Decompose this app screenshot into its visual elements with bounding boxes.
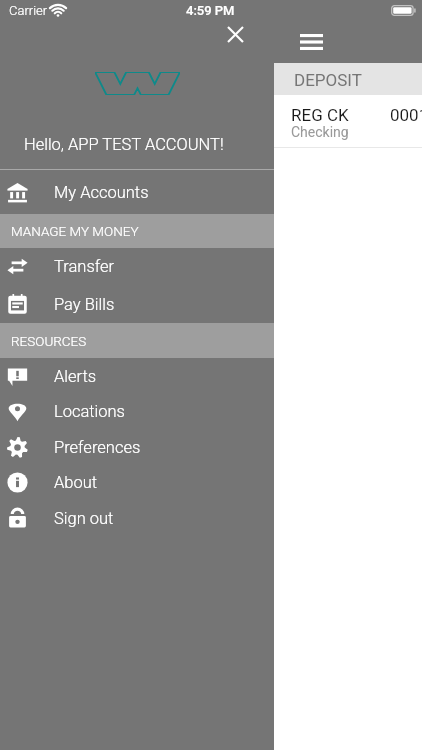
staticText: Checking xyxy=(291,124,349,140)
staticText: Locations xyxy=(54,402,125,421)
button[interactable]: Alerts xyxy=(0,358,274,394)
staticText: MANAGE MY MONEY xyxy=(11,223,139,239)
staticText: Carrier xyxy=(9,3,48,18)
button[interactable]: Sign out xyxy=(0,500,274,536)
button[interactable]: Preferences xyxy=(0,429,274,465)
button[interactable]: Menu xyxy=(294,25,328,59)
staticText: RESOURCES xyxy=(11,333,87,349)
staticText: Pay Bills xyxy=(54,295,115,314)
staticText: 4:59 PM xyxy=(186,3,235,18)
staticText: About xyxy=(54,473,98,492)
staticText: Alerts xyxy=(54,367,97,386)
staticText: Preferences xyxy=(54,438,141,457)
button[interactable]: Pay Bills xyxy=(0,285,274,323)
staticText: My Accounts xyxy=(54,183,149,202)
staticText: DEPOSIT xyxy=(294,70,362,90)
button[interactable]: About xyxy=(0,465,274,500)
staticText: 00011 xyxy=(390,105,422,125)
staticText: Hello, APP TEST ACCOUNT! xyxy=(24,135,224,154)
button[interactable]: Close xyxy=(219,18,252,51)
staticText: Transfer xyxy=(54,257,115,276)
button[interactable]: Transfer xyxy=(0,248,274,285)
button[interactable]: Locations xyxy=(0,394,274,429)
staticText: REG CK xyxy=(291,105,349,125)
button[interactable]: My Accounts xyxy=(0,170,274,214)
staticText: Sign out xyxy=(54,509,114,528)
